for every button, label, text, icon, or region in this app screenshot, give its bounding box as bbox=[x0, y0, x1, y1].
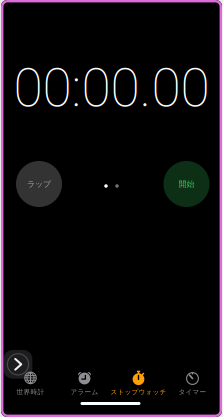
staticText: アラーム bbox=[70, 388, 98, 396]
button[interactable]: タイマー bbox=[165, 370, 219, 396]
staticText: タイマー bbox=[178, 388, 206, 396]
staticText: 00:00.00 bbox=[13, 57, 209, 119]
staticText: ラップ bbox=[27, 179, 51, 189]
button[interactable]: ストップウォッチ bbox=[111, 370, 165, 396]
button[interactable]: 世界時計 bbox=[3, 370, 57, 396]
button[interactable]: ラップ bbox=[16, 161, 62, 207]
button[interactable]: 開始 bbox=[163, 161, 209, 207]
button[interactable]: 開く bbox=[4, 350, 32, 379]
button[interactable]: アラーム bbox=[57, 370, 111, 396]
staticText: ストップウォッチ bbox=[110, 388, 166, 396]
staticText: 開始 bbox=[178, 179, 194, 189]
staticText: 世界時計 bbox=[16, 388, 44, 396]
